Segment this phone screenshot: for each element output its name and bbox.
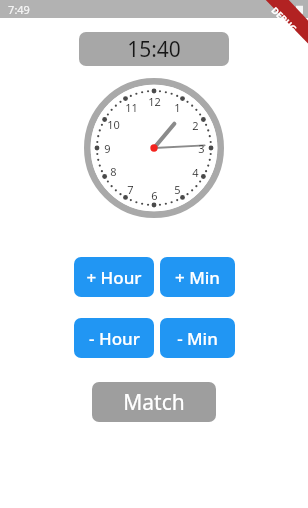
button[interactable]: 15:40 bbox=[79, 32, 229, 66]
staticText: 9 bbox=[104, 141, 111, 156]
staticText: + Min bbox=[175, 266, 220, 289]
staticText: 10 bbox=[107, 117, 120, 132]
staticText: - Min bbox=[177, 327, 218, 350]
button[interactable]: Match bbox=[92, 382, 216, 422]
staticText: 12 bbox=[148, 94, 161, 109]
other: Battery bbox=[296, 4, 303, 15]
staticText: Match bbox=[123, 388, 185, 417]
staticText: 5 bbox=[174, 182, 181, 197]
staticText: 7 bbox=[127, 182, 134, 197]
staticText: 4 bbox=[192, 165, 199, 180]
staticText: 3 bbox=[198, 141, 205, 156]
staticText: 7:49 bbox=[8, 2, 30, 17]
staticText: 8 bbox=[110, 164, 117, 179]
button[interactable]: - Hour bbox=[74, 318, 154, 358]
staticText: DEBUG bbox=[269, 4, 300, 34]
other: Wifi bbox=[282, 4, 293, 15]
staticText: 11 bbox=[125, 100, 138, 115]
staticText: 15:40 bbox=[127, 35, 181, 64]
staticText: - Hour bbox=[89, 327, 140, 350]
staticText: 1 bbox=[174, 100, 181, 115]
button[interactable]: + Hour bbox=[74, 257, 154, 297]
button[interactable]: + Min bbox=[160, 257, 235, 297]
button[interactable]: - Min bbox=[160, 318, 235, 358]
staticText: 2 bbox=[192, 118, 199, 133]
staticText: + Hour bbox=[86, 266, 142, 289]
staticText: 6 bbox=[151, 188, 158, 203]
